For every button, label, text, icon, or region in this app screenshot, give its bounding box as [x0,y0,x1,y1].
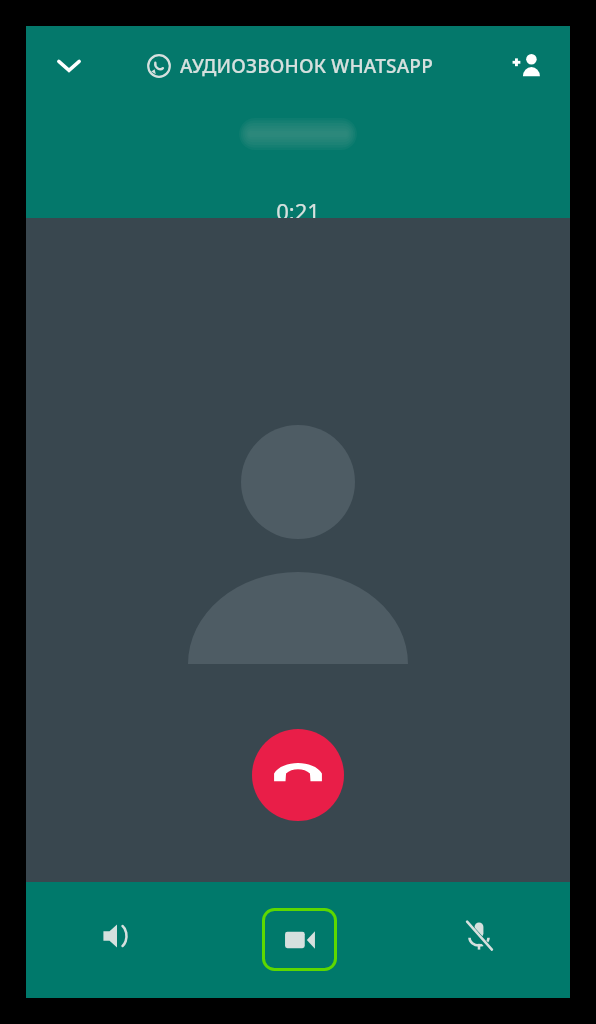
button[interactable]: Speaker [91,910,143,962]
button[interactable]: Switch to video call [262,908,337,971]
button[interactable]: Add participant [501,39,553,91]
staticText: 0:21 [276,196,320,226]
button[interactable]: End call [252,729,344,821]
staticText: АУДИОЗВОНОК WHATSAPP [180,53,433,79]
button[interactable]: Microphone muted [453,910,505,962]
button[interactable]: Minimize [43,39,95,91]
